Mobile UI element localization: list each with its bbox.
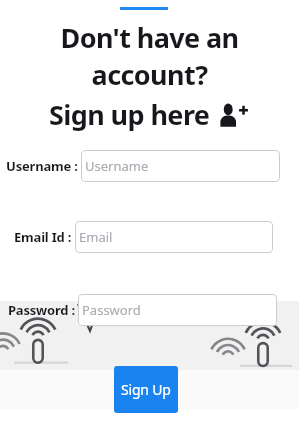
other: Add user — [217, 101, 251, 129]
button[interactable]: Sign Up — [114, 366, 178, 413]
staticText: Password — [82, 301, 141, 319]
staticText: Email Id : — [14, 228, 72, 246]
staticText: Sign Up — [121, 380, 171, 399]
staticText: Username — [85, 157, 149, 175]
staticText: Don't have an account? — [0, 19, 299, 93]
button[interactable]: Username — [81, 150, 280, 182]
button[interactable]: Password — [78, 294, 277, 326]
button[interactable]: Email — [75, 221, 273, 253]
staticText: Password : — [8, 301, 75, 319]
staticText: Sign up here — [49, 96, 210, 133]
staticText: Username : — [6, 157, 78, 175]
staticText: Email — [79, 228, 113, 246]
